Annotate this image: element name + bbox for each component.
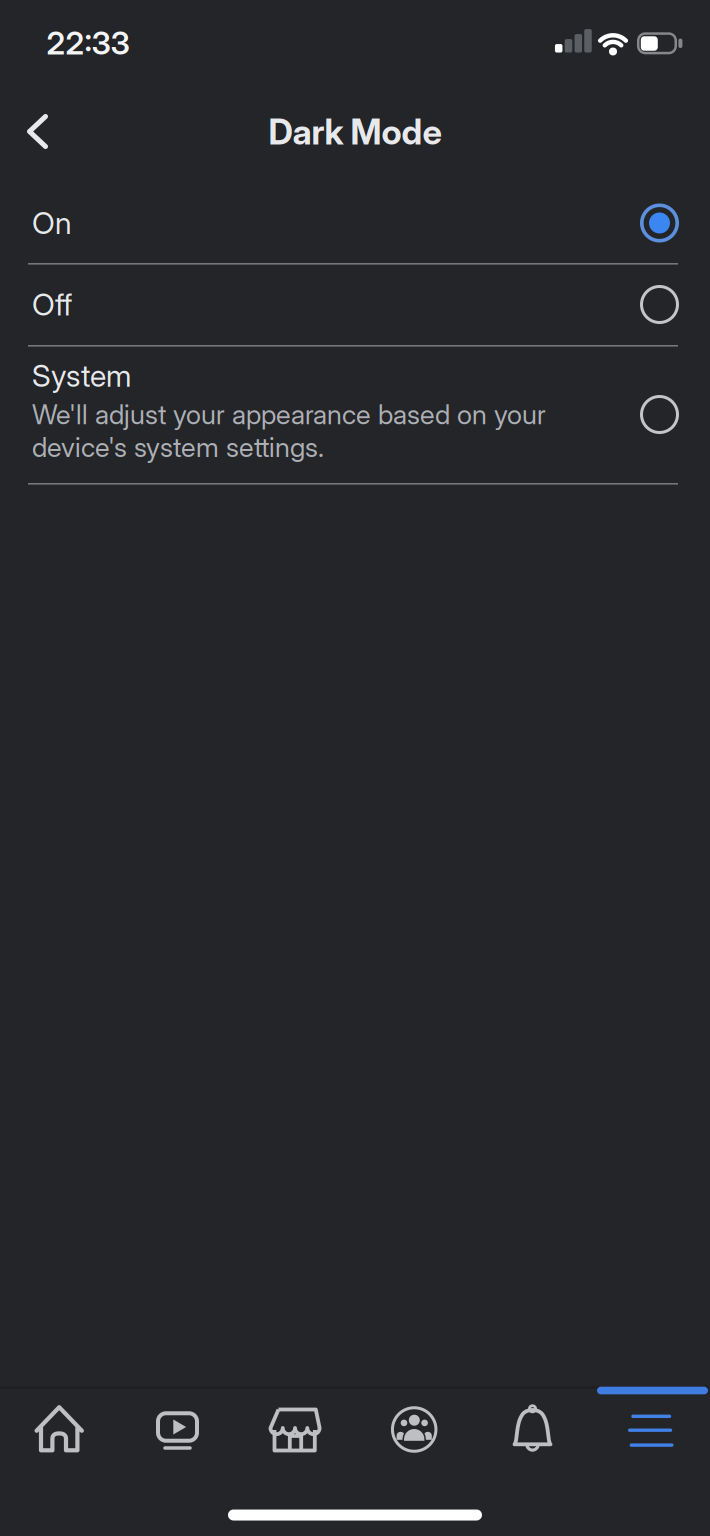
staticText: System xyxy=(32,357,131,394)
button[interactable]: Video xyxy=(118,1388,236,1478)
button[interactable]: Menu xyxy=(592,1388,710,1478)
button[interactable]: System xyxy=(0,345,710,483)
staticText: 22:33 xyxy=(46,24,129,62)
staticText: Dark Mode xyxy=(268,111,441,153)
button[interactable]: Off xyxy=(0,263,710,345)
button[interactable]: Notifications xyxy=(473,1388,591,1478)
button[interactable]: Home xyxy=(0,1388,118,1478)
button[interactable]: Back xyxy=(15,109,59,153)
staticText: device's system settings. xyxy=(32,431,324,463)
staticText: On xyxy=(32,205,72,241)
staticText: We'll adjust your appearance based on yo… xyxy=(32,398,546,431)
button[interactable]: Groups xyxy=(355,1388,473,1478)
button[interactable]: On xyxy=(0,183,710,263)
staticText: Off xyxy=(32,286,72,323)
button[interactable]: Marketplace xyxy=(237,1388,355,1478)
